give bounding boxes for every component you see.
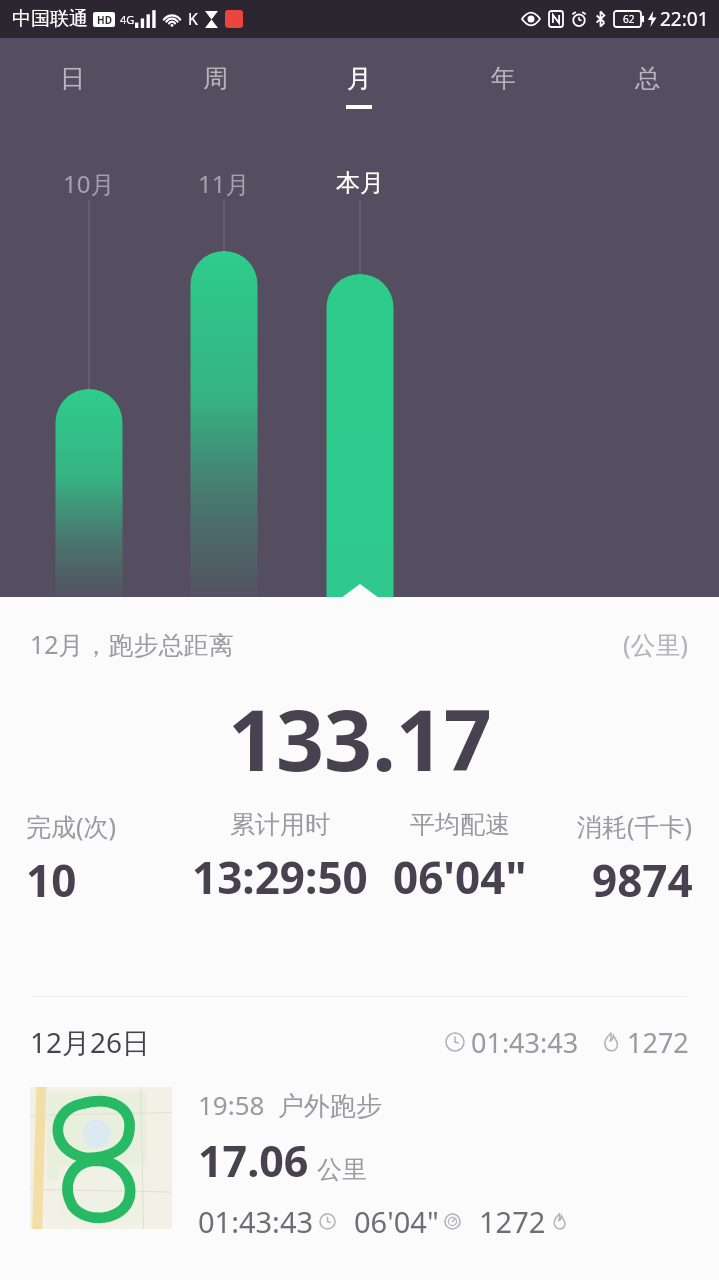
button[interactable]: 11月 [176, 162, 272, 204]
staticText: 17.06 [198, 1131, 309, 1190]
staticText: 本月 [336, 168, 384, 198]
button[interactable]: 周 [143, 38, 287, 134]
button[interactable]: 日 [0, 38, 143, 134]
other: Calories [601, 1032, 621, 1052]
button[interactable]: 年 [431, 38, 575, 134]
staticText: 周 [203, 63, 228, 94]
staticText: 62 [623, 12, 635, 26]
staticText: 12月26日 [30, 1023, 151, 1061]
staticText: 公里 [317, 1154, 367, 1185]
staticText: (公里) [623, 627, 689, 661]
staticText: 06'04" [393, 847, 527, 907]
staticText: 10月 [63, 167, 115, 200]
staticText: 133.17 [228, 681, 492, 795]
staticText: 月 [347, 63, 372, 94]
staticText: 9874 [592, 850, 693, 910]
button[interactable]: 10月 [41, 162, 137, 204]
staticText: 22:01 [660, 6, 709, 32]
staticText: 消耗(千卡) [577, 809, 693, 843]
staticText: 01:43:43 [471, 1024, 579, 1061]
staticText: 中国联通 [12, 7, 88, 31]
button[interactable]: 月 [287, 38, 431, 134]
staticText: K [188, 8, 198, 30]
button[interactable]: 消耗(千卡) [540, 809, 693, 910]
staticText: 12月，跑步总距离 [30, 627, 234, 661]
staticText: 4G [120, 12, 135, 27]
staticText: 完成(次) [26, 809, 117, 843]
staticText: 平均配速 [410, 809, 510, 840]
staticText: 1272 [479, 1202, 546, 1241]
staticText: 01:43:43 [198, 1202, 314, 1241]
staticText: 06'04" [354, 1202, 439, 1241]
staticText: 11月 [198, 167, 250, 200]
staticText: 累计用时 [230, 809, 330, 840]
staticText: 19:58 户外跑步 [198, 1087, 382, 1123]
button[interactable]: 总 [575, 38, 719, 134]
staticText: 13:29:50 [192, 847, 368, 907]
staticText: 年 [491, 63, 516, 94]
staticText: HD [97, 13, 112, 27]
button[interactable]: 累计用时 [180, 809, 379, 907]
staticText: 1272 [627, 1024, 689, 1061]
button[interactable]: 平均配速 [379, 809, 540, 907]
button[interactable]: 完成(次) [26, 809, 180, 910]
staticText: 总 [635, 63, 660, 94]
other: Duration [445, 1032, 465, 1052]
button[interactable]: 本月 [312, 162, 408, 204]
staticText: 10 [26, 850, 77, 910]
button[interactable]: 19:58 户外跑步 [30, 1087, 689, 1241]
staticText: 日 [60, 63, 85, 94]
